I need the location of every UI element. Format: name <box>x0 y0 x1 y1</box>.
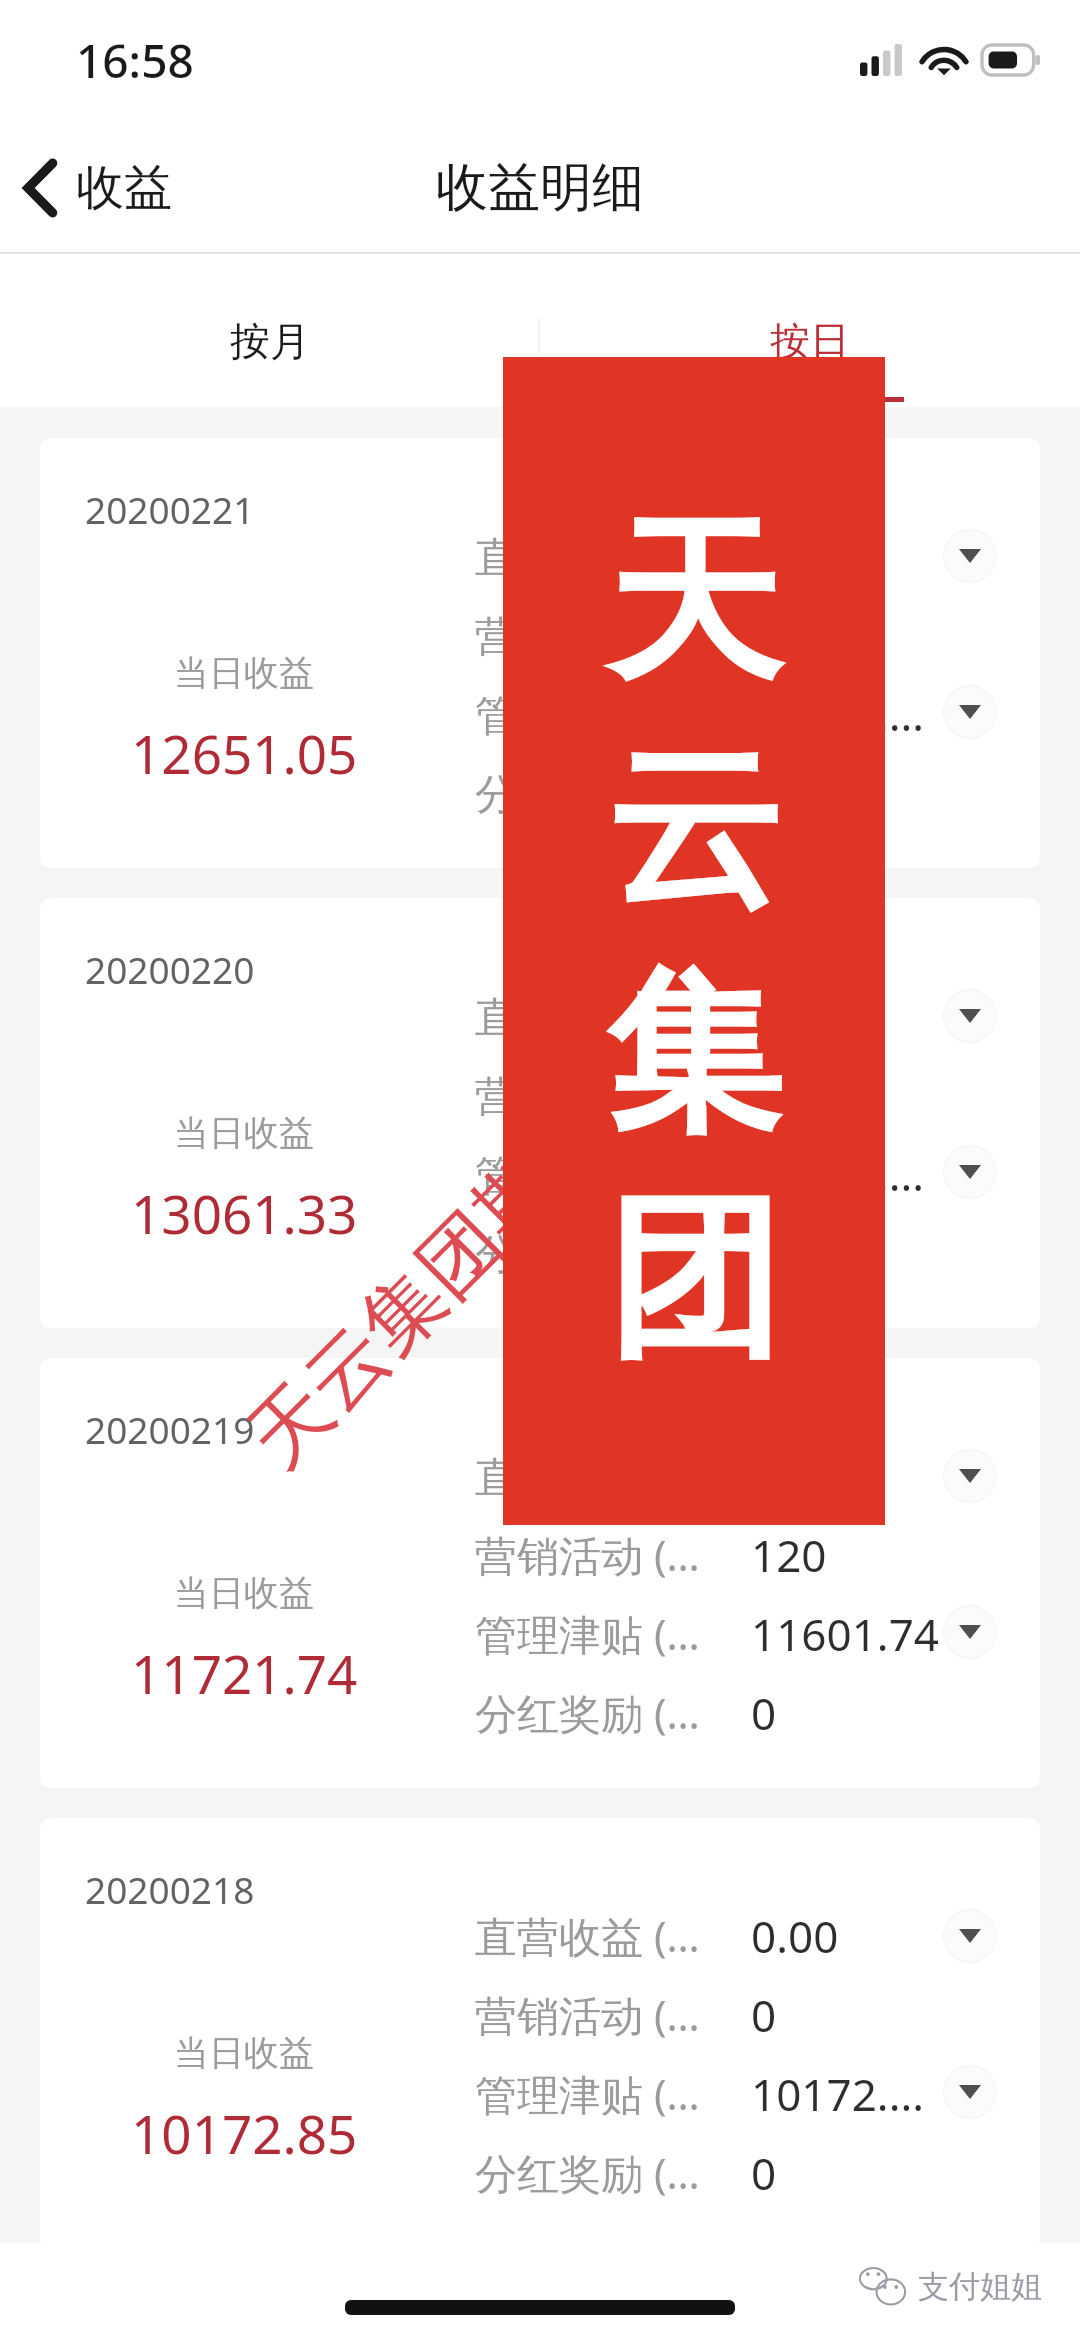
staticText: 云 <box>606 719 782 941</box>
staticText: 管理津贴 (… <box>475 1605 700 1662</box>
button[interactable]: 按日 <box>540 254 1080 407</box>
staticText: 13061.33 <box>131 1177 358 1249</box>
staticText: 营销活动 (… <box>475 1986 700 2043</box>
staticText: 营销活动 (… <box>475 1066 700 1123</box>
staticText: 天云集团期刊 <box>227 1078 638 1489</box>
staticText: 营销活动 (… <box>475 606 700 663</box>
staticText: 支付姐姐 <box>918 2267 1042 2306</box>
staticText: 11601.74 <box>751 1604 939 1664</box>
staticText: 0 <box>751 2143 777 2203</box>
button[interactable]: Expand details <box>943 685 997 739</box>
staticText: 直营收益 (… <box>475 1447 700 1504</box>
staticText: 0 <box>751 1683 777 1743</box>
button[interactable]: 20200218 <box>40 1818 1040 2248</box>
staticText: 当日收益 <box>174 651 314 695</box>
staticText: 0.00 <box>751 526 839 586</box>
staticText: 分红奖励 (… <box>475 1684 700 1741</box>
staticText: 收益 <box>76 158 172 218</box>
staticText: 团 <box>606 1170 782 1392</box>
staticText: 直营收益 (… <box>475 1907 700 1964</box>
staticText: 12941.... <box>751 1144 925 1204</box>
staticText: 0 <box>751 1223 777 1283</box>
button[interactable]: Expand details <box>943 1449 997 1503</box>
staticText: 分红奖励 (… <box>475 2144 700 2201</box>
staticText: 12531.... <box>751 684 925 744</box>
staticText: 10172.85 <box>131 2097 358 2169</box>
staticText: 10172.... <box>751 2064 925 2124</box>
staticText: 20200220 <box>85 944 255 994</box>
staticText: 直营收益 (… <box>475 987 700 1044</box>
staticText: 收益明细 <box>436 155 644 221</box>
button[interactable]: Expand details <box>943 2065 997 2119</box>
button[interactable]: Expand details <box>943 1909 997 1963</box>
button[interactable]: 20200219 <box>40 1358 1040 1788</box>
staticText: 120 <box>751 1525 827 1585</box>
staticText: 管理津贴 (… <box>475 685 700 742</box>
staticText: 集 <box>606 945 782 1167</box>
staticText: 16:58 <box>76 29 194 92</box>
staticText: 0 <box>751 1065 777 1125</box>
staticText: 按日 <box>770 316 850 366</box>
staticText: 0 <box>751 763 777 823</box>
staticText: 0 <box>751 1985 777 2045</box>
staticText: 管理津贴 (… <box>475 1145 700 1202</box>
button[interactable]: Expand details <box>943 529 997 583</box>
staticText: 20200218 <box>85 1864 255 1914</box>
button[interactable]: 20200221 <box>40 438 1040 868</box>
staticText: 分红奖励 (… <box>475 764 700 821</box>
button[interactable]: Back to 收益 <box>0 147 190 229</box>
staticText: 分红奖励 (… <box>475 1224 700 1281</box>
staticText: 0 <box>751 605 777 665</box>
button[interactable]: Expand details <box>943 989 997 1043</box>
staticText: 营销活动 (… <box>475 1526 700 1583</box>
staticText: 11721.74 <box>131 1637 358 1709</box>
button[interactable]: 20200220 <box>40 898 1040 1328</box>
staticText: 0.00 <box>751 1906 839 1966</box>
staticText: 直营收益 (… <box>475 527 700 584</box>
button[interactable]: Expand details <box>943 1605 997 1659</box>
staticText: 天 <box>606 493 782 715</box>
button[interactable]: 按月 <box>0 254 540 407</box>
staticText: 20200219 <box>85 1404 255 1454</box>
staticText: 0.00 <box>751 986 839 1046</box>
staticText: 当日收益 <box>174 1111 314 1155</box>
staticText: 20200221 <box>85 484 255 534</box>
button[interactable]: Expand details <box>943 1145 997 1199</box>
staticText: 当日收益 <box>174 2031 314 2075</box>
staticText: 按月 <box>230 316 310 366</box>
staticText: 管理津贴 (… <box>475 2065 700 2122</box>
staticText: 当日收益 <box>174 1571 314 1615</box>
staticText: 12651.05 <box>131 717 358 789</box>
